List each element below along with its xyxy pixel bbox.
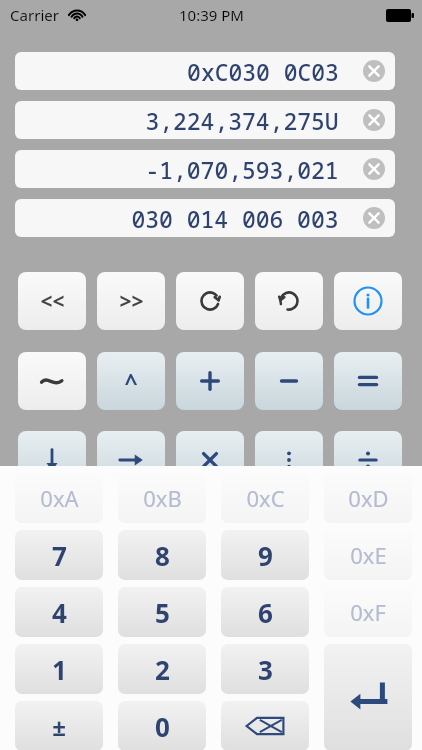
staticText: 10:39 PM xyxy=(179,5,244,25)
button[interactable]: Clear xyxy=(361,58,387,84)
button[interactable]: + xyxy=(176,352,244,410)
staticText: Carrier xyxy=(10,5,59,25)
button[interactable]: divide xyxy=(334,431,402,489)
staticText: 0xA xyxy=(40,483,79,513)
button[interactable]: << xyxy=(18,272,86,330)
button[interactable]: ^ xyxy=(97,352,165,410)
button[interactable]: Backspace xyxy=(221,701,309,750)
button[interactable]: 6 xyxy=(221,587,309,637)
button[interactable]: 3,224,374,275U xyxy=(15,101,395,139)
staticText: 4 xyxy=(52,595,67,630)
button[interactable]: 2 xyxy=(118,644,206,694)
button[interactable]: mod xyxy=(255,431,323,489)
button[interactable]: = xyxy=(334,352,402,410)
button[interactable]: ± xyxy=(15,701,103,750)
button[interactable]: 8 xyxy=(118,530,206,580)
button[interactable]: Redo xyxy=(255,272,323,330)
button[interactable]: Clear xyxy=(361,107,387,133)
staticText: -1,070,593,021 xyxy=(145,154,339,185)
staticText: 3,224,374,275U xyxy=(145,105,339,136)
button[interactable]: ~ xyxy=(18,352,86,410)
staticText: 7 xyxy=(52,538,67,573)
button[interactable]: 5 xyxy=(118,587,206,637)
staticText: 0xF xyxy=(350,597,386,627)
button[interactable]: -1,070,593,021 xyxy=(15,150,395,188)
button[interactable]: Enter xyxy=(324,644,412,750)
staticText: 6 xyxy=(258,595,273,630)
button[interactable]: down xyxy=(18,431,86,489)
button[interactable]: 0xE xyxy=(324,530,412,580)
button[interactable]: Clear xyxy=(361,156,387,182)
staticText: 2 xyxy=(155,652,170,687)
staticText: 3 xyxy=(258,652,273,687)
button[interactable]: - xyxy=(255,352,323,410)
staticText: >> xyxy=(119,287,144,316)
staticText: 9 xyxy=(258,538,273,573)
button[interactable]: 030 014 006 003 xyxy=(15,199,395,237)
button[interactable]: 7 xyxy=(15,530,103,580)
button[interactable]: 0xD xyxy=(324,473,412,523)
button[interactable]: 0xA xyxy=(15,473,103,523)
staticText: 030 014 006 003 xyxy=(131,203,339,234)
button[interactable]: 0xC xyxy=(221,473,309,523)
button[interactable]: 0xB xyxy=(118,473,206,523)
button[interactable]: 3 xyxy=(221,644,309,694)
staticText: 0xD xyxy=(348,483,389,513)
staticText: << xyxy=(40,287,65,316)
staticText: 0xE xyxy=(350,540,387,570)
button[interactable]: Info xyxy=(334,272,402,330)
staticText: 8 xyxy=(155,538,170,573)
staticText: ^ xyxy=(124,366,138,397)
button[interactable]: 0xF xyxy=(324,587,412,637)
button[interactable]: 0 xyxy=(118,701,206,750)
staticText: 0xC030 0C03 xyxy=(187,56,339,87)
staticText: ± xyxy=(52,710,66,743)
button[interactable]: multiply xyxy=(176,431,244,489)
button[interactable]: right xyxy=(97,431,165,489)
staticText: 0 xyxy=(155,709,170,744)
button[interactable]: >> xyxy=(97,272,165,330)
button[interactable]: 9 xyxy=(221,530,309,580)
button[interactable]: 4 xyxy=(15,587,103,637)
staticText: 1 xyxy=(52,652,67,687)
staticText: 0xC xyxy=(246,483,285,513)
button[interactable]: 1 xyxy=(15,644,103,694)
button[interactable]: Undo xyxy=(176,272,244,330)
button[interactable]: 0xC030 0C03 xyxy=(15,52,395,90)
staticText: 5 xyxy=(155,595,170,630)
staticText: 0xB xyxy=(143,483,182,513)
button[interactable]: Clear xyxy=(361,205,387,231)
